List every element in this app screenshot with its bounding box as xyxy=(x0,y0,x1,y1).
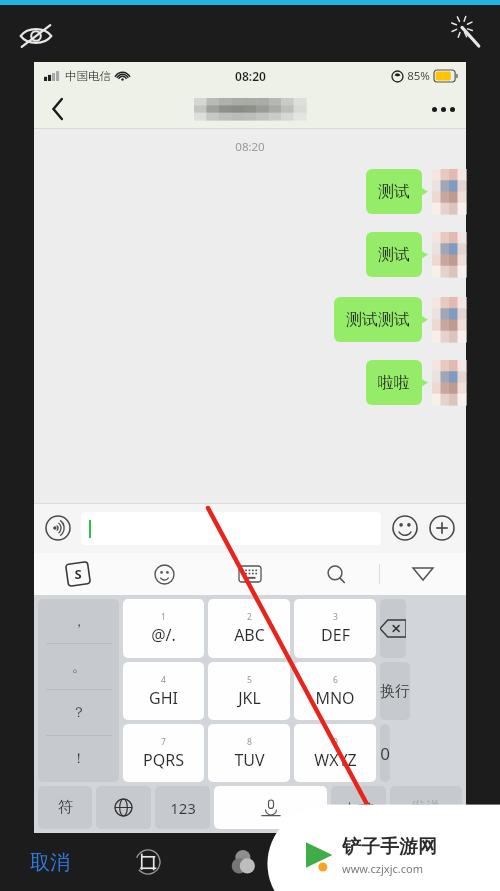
staticText: 0 xyxy=(380,742,390,765)
staticText: 8 xyxy=(247,736,252,748)
staticText: DEF xyxy=(321,624,350,646)
button[interactable]: 7 xyxy=(123,724,204,782)
staticText: 发送 xyxy=(411,798,441,817)
staticText: 铲子手游网 xyxy=(342,835,437,859)
staticText: 符 xyxy=(58,798,73,817)
staticText: 4 xyxy=(161,674,166,686)
button[interactable]: Magic xyxy=(446,12,490,56)
staticText: 换行 xyxy=(380,682,410,701)
staticText: S xyxy=(74,565,82,583)
button[interactable]: 123 xyxy=(155,786,210,829)
button[interactable]: Mosaic xyxy=(389,833,486,891)
staticText: 3 xyxy=(333,611,338,623)
button[interactable] xyxy=(380,599,406,658)
staticText: ！ xyxy=(72,750,86,768)
button[interactable]: 取消 xyxy=(0,833,100,891)
button[interactable]: 8 xyxy=(208,724,290,782)
button[interactable] xyxy=(214,786,327,829)
button[interactable]: 5 xyxy=(208,662,290,720)
button[interactable]: Emoji xyxy=(121,553,207,595)
staticText: 6 xyxy=(333,674,338,686)
button[interactable]: 符 xyxy=(38,786,92,829)
button[interactable]: Back xyxy=(34,89,82,129)
button[interactable]: 3 xyxy=(294,599,376,658)
button[interactable]: Emoji xyxy=(390,513,420,543)
staticText: 08:20 xyxy=(235,139,265,155)
staticText: 123 xyxy=(170,798,196,818)
staticText: 中/英 xyxy=(343,799,374,817)
staticText: 08:20 xyxy=(235,68,266,84)
button[interactable]: Keyboard xyxy=(207,553,293,595)
button[interactable]: Collapse keyboard xyxy=(380,553,466,595)
staticText: 。 xyxy=(72,658,86,676)
button[interactable]: 0 xyxy=(380,724,390,782)
button[interactable]: More xyxy=(420,89,466,129)
button[interactable]: 测试 xyxy=(366,169,422,214)
button[interactable]: 啦啦 xyxy=(366,360,422,405)
button[interactable]: Hide xyxy=(14,14,58,58)
button[interactable]: 1 xyxy=(123,599,204,658)
button[interactable]: 2 xyxy=(208,599,290,658)
staticText: 测试 xyxy=(378,182,410,202)
staticText: WXYZ xyxy=(314,749,357,771)
button[interactable]: More options xyxy=(427,513,457,543)
staticText: 测试测试 xyxy=(346,310,410,330)
button[interactable]: Sogou xyxy=(34,553,121,595)
button[interactable]: Filters xyxy=(196,833,292,891)
staticText: 1 xyxy=(161,611,166,623)
button[interactable]: 测试测试 xyxy=(334,297,422,342)
staticText: 2 xyxy=(247,611,252,623)
staticText: ？ xyxy=(72,704,86,722)
button[interactable]: ， xyxy=(38,599,119,644)
button[interactable]: 中/英 xyxy=(331,786,386,829)
staticText: ， xyxy=(72,613,86,631)
button[interactable]: Adjust xyxy=(292,833,389,891)
button[interactable]: 发送 xyxy=(390,786,462,829)
staticText: 取消 xyxy=(30,850,70,875)
staticText: TUV xyxy=(234,749,265,771)
staticText: GHI xyxy=(149,687,178,709)
staticText: 85% xyxy=(407,68,430,84)
button[interactable]: ！ xyxy=(38,736,119,782)
staticText: 测试 xyxy=(378,245,410,265)
button[interactable]: 4 xyxy=(123,662,204,720)
button[interactable] xyxy=(96,786,151,829)
button[interactable]: ？ xyxy=(38,690,119,736)
button[interactable]: Search xyxy=(293,553,379,595)
button[interactable]: 6 xyxy=(294,662,376,720)
staticText: 9 xyxy=(333,736,338,748)
staticText: 7 xyxy=(161,736,166,748)
staticText: 中国电信 xyxy=(65,69,111,83)
staticText: JKL xyxy=(238,687,261,709)
staticText: @/. xyxy=(151,624,176,646)
button[interactable] xyxy=(81,512,381,545)
staticText: www.czjxjc.com xyxy=(342,861,423,876)
staticText: MNO xyxy=(315,687,355,709)
staticText: 5 xyxy=(247,674,252,686)
staticText: ABC xyxy=(234,624,265,646)
button[interactable]: 测试 xyxy=(366,232,422,277)
button[interactable]: 换行 xyxy=(380,662,410,720)
staticText: 啦啦 xyxy=(378,373,410,393)
button[interactable]: 。 xyxy=(38,644,119,690)
button[interactable]: Crop xyxy=(100,833,196,891)
button[interactable]: Voice xyxy=(43,513,73,543)
staticText: PQRS xyxy=(143,749,184,771)
button[interactable]: 9 xyxy=(294,724,376,782)
